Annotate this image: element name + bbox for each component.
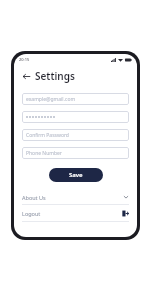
button[interactable]: Confirm Password bbox=[22, 129, 129, 141]
staticText: Logout bbox=[22, 210, 41, 217]
button[interactable]: Phone Number bbox=[22, 147, 129, 159]
staticText: example@gmail.com bbox=[26, 96, 76, 103]
staticText: Settings bbox=[35, 69, 75, 83]
button[interactable]: Logout bbox=[22, 205, 129, 221]
button[interactable] bbox=[22, 111, 129, 123]
button[interactable]: Back bbox=[20, 70, 32, 82]
staticText: 20:15 bbox=[19, 57, 30, 62]
button[interactable]: Save bbox=[49, 168, 103, 182]
staticText: Save bbox=[69, 171, 83, 179]
other: Logout bbox=[122, 210, 129, 217]
staticText: Phone Number bbox=[26, 150, 62, 157]
staticText: About Us bbox=[22, 194, 46, 201]
button[interactable]: example@gmail.com bbox=[22, 93, 129, 105]
button[interactable]: About Us bbox=[22, 190, 129, 204]
staticText: Confirm Password bbox=[26, 132, 69, 139]
